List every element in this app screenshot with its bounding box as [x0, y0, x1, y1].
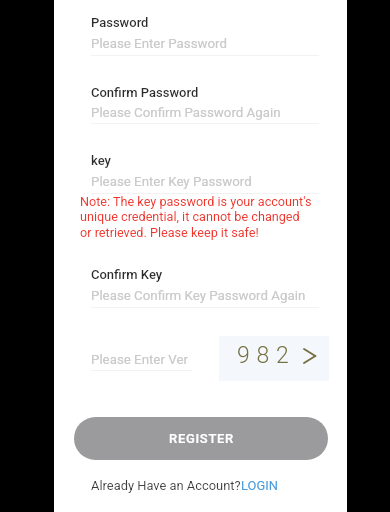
- staticText: Already Have an Account?: [91, 478, 241, 493]
- staticText: Note: The key password is your account's…: [80, 194, 314, 240]
- staticText: Confirm Password: [91, 85, 199, 100]
- staticText: Please Enter Key Password: [91, 174, 252, 190]
- staticText: Please Enter Ver: [91, 352, 188, 368]
- staticText: Confirm Key: [91, 267, 163, 282]
- staticText: REGISTER: [169, 431, 234, 446]
- button[interactable]: LOGIN: [241, 478, 278, 493]
- button[interactable]: Refresh verification code: [219, 336, 329, 381]
- staticText: 9 8 2: [237, 342, 290, 369]
- staticText: key: [91, 153, 111, 168]
- staticText: Please Confirm Key Password Again: [91, 288, 306, 304]
- staticText: Please Enter Password: [91, 36, 227, 52]
- button[interactable]: REGISTER: [74, 417, 328, 460]
- staticText: Please Confirm Password Again: [91, 105, 281, 121]
- staticText: Password: [91, 15, 149, 30]
